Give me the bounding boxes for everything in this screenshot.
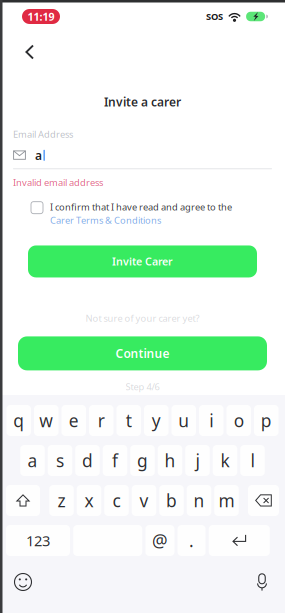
staticText: g xyxy=(137,449,148,472)
button[interactable]: p xyxy=(254,405,278,436)
button[interactable]: e xyxy=(61,405,86,436)
staticText: SOS xyxy=(206,10,223,23)
button[interactable]: u xyxy=(171,405,196,436)
staticText: @ xyxy=(152,529,168,552)
staticText: h xyxy=(164,449,175,472)
staticText: p xyxy=(261,409,272,432)
staticText: a xyxy=(27,449,37,472)
staticText: d xyxy=(82,449,93,472)
staticText: r xyxy=(98,409,105,432)
button[interactable]: j xyxy=(185,445,210,476)
staticText: Invalid email address xyxy=(13,176,103,189)
button[interactable]: Carer Terms & Conditions xyxy=(50,214,161,226)
staticText: Step 4/6 xyxy=(125,380,159,393)
button[interactable]: n xyxy=(187,485,211,516)
staticText: Carer Terms & Conditions xyxy=(50,214,161,226)
staticText: Continue xyxy=(115,345,169,361)
staticText: b xyxy=(166,489,177,512)
button[interactable]: Emoji xyxy=(6,567,40,597)
button[interactable]: Shift xyxy=(6,485,40,516)
button[interactable]: c xyxy=(104,485,129,516)
staticText: w xyxy=(39,409,53,432)
staticText: . xyxy=(189,529,194,552)
button[interactable]: 123 xyxy=(6,525,70,556)
button[interactable]: w xyxy=(34,405,58,436)
staticText: n xyxy=(193,489,204,512)
staticText: o xyxy=(234,409,244,432)
button[interactable]: Continue xyxy=(18,336,267,370)
button[interactable]: d xyxy=(75,445,100,476)
staticText: z xyxy=(57,489,65,512)
staticText: I confirm that I have read and agree to … xyxy=(50,201,232,213)
button[interactable]: Invite Carer xyxy=(28,245,257,277)
button[interactable]: r xyxy=(89,405,113,436)
staticText: t xyxy=(126,409,132,432)
button[interactable]: f xyxy=(103,445,127,476)
staticText: x xyxy=(84,489,93,512)
button[interactable]: Return xyxy=(209,525,270,556)
button[interactable]: b xyxy=(159,485,184,516)
button[interactable]: Delete xyxy=(248,485,279,516)
button[interactable]: . xyxy=(178,525,206,556)
button[interactable]: x xyxy=(77,485,101,516)
button[interactable]: h xyxy=(158,445,182,476)
staticText: Invite Carer xyxy=(112,254,173,269)
button[interactable]: i xyxy=(199,405,223,436)
staticText: Invite a carer xyxy=(104,94,181,110)
button[interactable]: q xyxy=(6,405,31,436)
staticText: e xyxy=(69,409,79,432)
staticText: q xyxy=(13,409,24,432)
button[interactable]: Confirm terms and conditions xyxy=(31,201,43,214)
staticText: a xyxy=(35,147,42,163)
staticText: s xyxy=(56,449,64,472)
button[interactable]: @ xyxy=(145,525,174,556)
staticText: Not sure of your carer yet? xyxy=(85,312,199,324)
button[interactable]: v xyxy=(132,485,156,516)
button[interactable]: g xyxy=(130,445,155,476)
button[interactable]: l xyxy=(240,445,265,476)
staticText: v xyxy=(139,489,148,512)
staticText: m xyxy=(218,489,234,512)
staticText: j xyxy=(195,449,199,472)
button[interactable]: a xyxy=(20,445,45,476)
button[interactable]: y xyxy=(144,405,168,436)
staticText: Email Address xyxy=(13,128,73,140)
staticText: c xyxy=(112,489,120,512)
staticText: f xyxy=(112,449,118,472)
staticText: i xyxy=(209,409,213,432)
button[interactable]: z xyxy=(49,485,74,516)
staticText: 123 xyxy=(26,531,50,550)
staticText: l xyxy=(250,449,254,472)
button[interactable]: s xyxy=(48,445,72,476)
button[interactable]: k xyxy=(213,445,237,476)
staticText: u xyxy=(178,409,189,432)
button[interactable]: Dictate xyxy=(245,567,279,597)
button[interactable]: t xyxy=(116,405,141,436)
button[interactable]: Back xyxy=(17,40,43,64)
staticText: 11:19 xyxy=(27,9,54,24)
button[interactable]: o xyxy=(226,405,251,436)
button[interactable]: m xyxy=(214,485,239,516)
staticText: k xyxy=(220,449,229,472)
staticText: y xyxy=(152,409,161,432)
